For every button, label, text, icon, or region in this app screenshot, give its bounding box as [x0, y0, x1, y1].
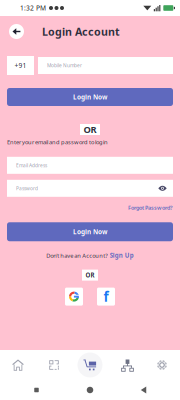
staticText: OR: [85, 271, 94, 279]
staticText: f: [103, 287, 108, 306]
button[interactable]: Cart: [72, 350, 108, 380]
button[interactable]: Sign Up: [110, 251, 134, 260]
button[interactable]: Home: [0, 350, 36, 380]
staticText: +91: [14, 61, 26, 70]
button[interactable]: Orders: [108, 350, 144, 380]
button[interactable]: Recent apps: [19, 380, 53, 400]
button[interactable]: Back: [126, 380, 160, 400]
staticText: Forgot Password?: [128, 204, 173, 211]
staticText: Don't have an Account?: [46, 251, 107, 259]
button[interactable]: Forgot Password?: [128, 204, 173, 211]
staticText: Mobile Number: [47, 62, 82, 69]
staticText: Login Now: [73, 93, 107, 101]
button[interactable]: Login Now: [7, 88, 173, 106]
button[interactable]: Sign in with Facebook: [97, 288, 115, 306]
staticText: 1:32 PM: [20, 3, 46, 13]
button[interactable]: Categories: [36, 350, 72, 380]
staticText: Password: [16, 185, 38, 191]
staticText: Enter your email and password to login: [7, 138, 108, 146]
staticText: Sign Up: [110, 251, 134, 260]
staticText: OR: [83, 123, 96, 136]
staticText: Login Account: [42, 24, 120, 39]
button[interactable]: Back: [9, 24, 24, 39]
button[interactable]: Sign in with Google: [65, 288, 83, 306]
button[interactable]: Home: [73, 380, 107, 400]
staticText: Email Address: [16, 162, 47, 168]
button[interactable]: Settings: [144, 350, 180, 380]
button[interactable]: Login Now: [7, 222, 173, 241]
staticText: Login Now: [73, 227, 107, 236]
